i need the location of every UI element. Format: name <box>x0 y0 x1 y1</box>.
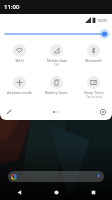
button[interactable]: Brightness <box>5 26 107 42</box>
staticText: Bluetooth <box>85 58 102 63</box>
button[interactable]: Wi-Fi <box>0 44 38 72</box>
button[interactable]: Back <box>0 184 38 200</box>
button[interactable]: Bluetooth <box>75 44 112 72</box>
button[interactable]: Search <box>8 171 104 182</box>
staticText: Battery Saver <box>45 90 68 95</box>
staticText: Airplane mode <box>7 90 32 95</box>
button[interactable]: Settings <box>98 107 108 117</box>
staticText: 11:00 <box>4 3 20 11</box>
button[interactable]: Recents <box>75 184 112 200</box>
button[interactable]: Mobile data <box>38 44 75 72</box>
button[interactable]: Edit <box>4 107 14 117</box>
staticText: Off <box>54 63 59 67</box>
button[interactable]: Sleep Timer <box>75 76 112 104</box>
staticText: Wi-Fi <box>15 58 24 63</box>
button[interactable]: Battery Saver <box>38 76 75 104</box>
staticText: Mobile data <box>47 58 67 63</box>
staticText: Tap to start <box>86 95 102 99</box>
button[interactable]: Home <box>38 184 75 200</box>
staticText: Sleep Timer <box>84 90 104 95</box>
staticText: 100% <box>97 18 108 23</box>
button[interactable]: Airplane mode <box>0 76 38 104</box>
